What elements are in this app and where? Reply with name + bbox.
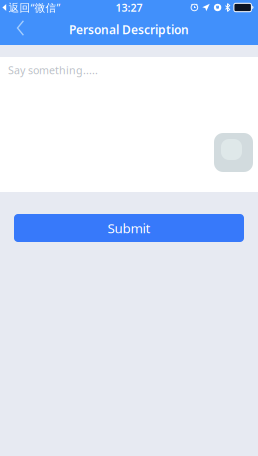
button[interactable]: Add photo xyxy=(214,133,253,172)
staticText: Submit xyxy=(107,219,150,237)
staticText: 返回“微信” xyxy=(8,0,60,15)
staticText: Say something..... xyxy=(8,63,98,77)
button[interactable]: Say something xyxy=(0,57,258,192)
button[interactable]: Submit xyxy=(14,214,244,242)
button[interactable]: Back xyxy=(0,16,36,44)
button[interactable]: Back to WeChat xyxy=(0,0,60,16)
staticText: 13:27 xyxy=(115,0,142,15)
staticText: Personal Description xyxy=(69,21,189,37)
